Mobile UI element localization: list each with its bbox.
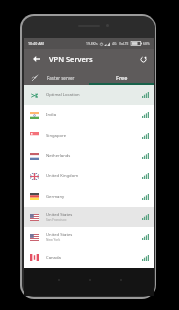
staticText: VoLTE [119, 41, 129, 46]
button[interactable]: Back [26, 49, 47, 69]
button[interactable]: Optimal Location [24, 85, 154, 105]
staticText: United States [46, 232, 73, 238]
staticText: Optimal Location [46, 92, 80, 98]
button[interactable]: United States [24, 207, 154, 227]
button[interactable]: Netherlands [24, 146, 154, 166]
staticText: Free [116, 74, 128, 81]
button[interactable]: United Kingdom [24, 166, 154, 186]
staticText: New York [46, 238, 61, 242]
staticText: 4G [112, 41, 117, 46]
button[interactable]: Singapore [24, 125, 154, 146]
staticText: Singapore [46, 133, 67, 139]
staticText: United Kingdom [46, 173, 79, 179]
staticText: San Francisco [46, 218, 67, 222]
staticText: Germany [46, 194, 65, 200]
button[interactable]: United States [24, 227, 154, 247]
staticText: VPN Servers [49, 54, 93, 64]
button[interactable]: India [24, 105, 154, 125]
button[interactable]: Free [89, 69, 154, 85]
staticText: United States [46, 212, 73, 218]
staticText: India [46, 112, 57, 118]
button[interactable]: Refresh [133, 49, 154, 69]
staticText: Netherlands [46, 153, 71, 159]
staticText: 68% [143, 41, 150, 46]
staticText: 10:40 AM [28, 41, 44, 46]
staticText: Canada [46, 255, 61, 261]
button[interactable]: Canada [24, 247, 154, 268]
button[interactable]: Faster server [24, 69, 89, 85]
staticText: 19.8K/s [86, 41, 98, 46]
button[interactable]: Germany [24, 186, 154, 207]
staticText: Faster server [47, 75, 75, 81]
